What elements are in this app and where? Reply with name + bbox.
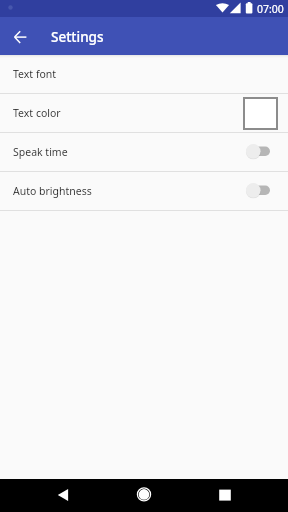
button[interactable]: Speak time	[0, 133, 288, 171]
button[interactable]: Home	[128, 479, 161, 512]
staticText: 07:00	[257, 2, 284, 16]
staticText: Settings	[51, 28, 104, 46]
staticText: Speak time	[13, 145, 68, 159]
button[interactable]: Toggle	[246, 142, 270, 162]
button[interactable]: Back	[7, 23, 33, 49]
staticText: Text font	[13, 67, 57, 81]
staticText: Auto brightness	[13, 184, 92, 198]
button[interactable]: Toggle	[246, 181, 270, 201]
button[interactable]: Auto brightness	[0, 172, 288, 210]
button[interactable]: Recent apps	[208, 479, 241, 512]
button[interactable]: Back	[47, 479, 80, 512]
button[interactable]: Text color	[0, 94, 288, 132]
staticText: Text color	[13, 106, 61, 120]
button[interactable]: Text font	[0, 55, 288, 93]
button[interactable]: Pick text color	[243, 97, 278, 130]
